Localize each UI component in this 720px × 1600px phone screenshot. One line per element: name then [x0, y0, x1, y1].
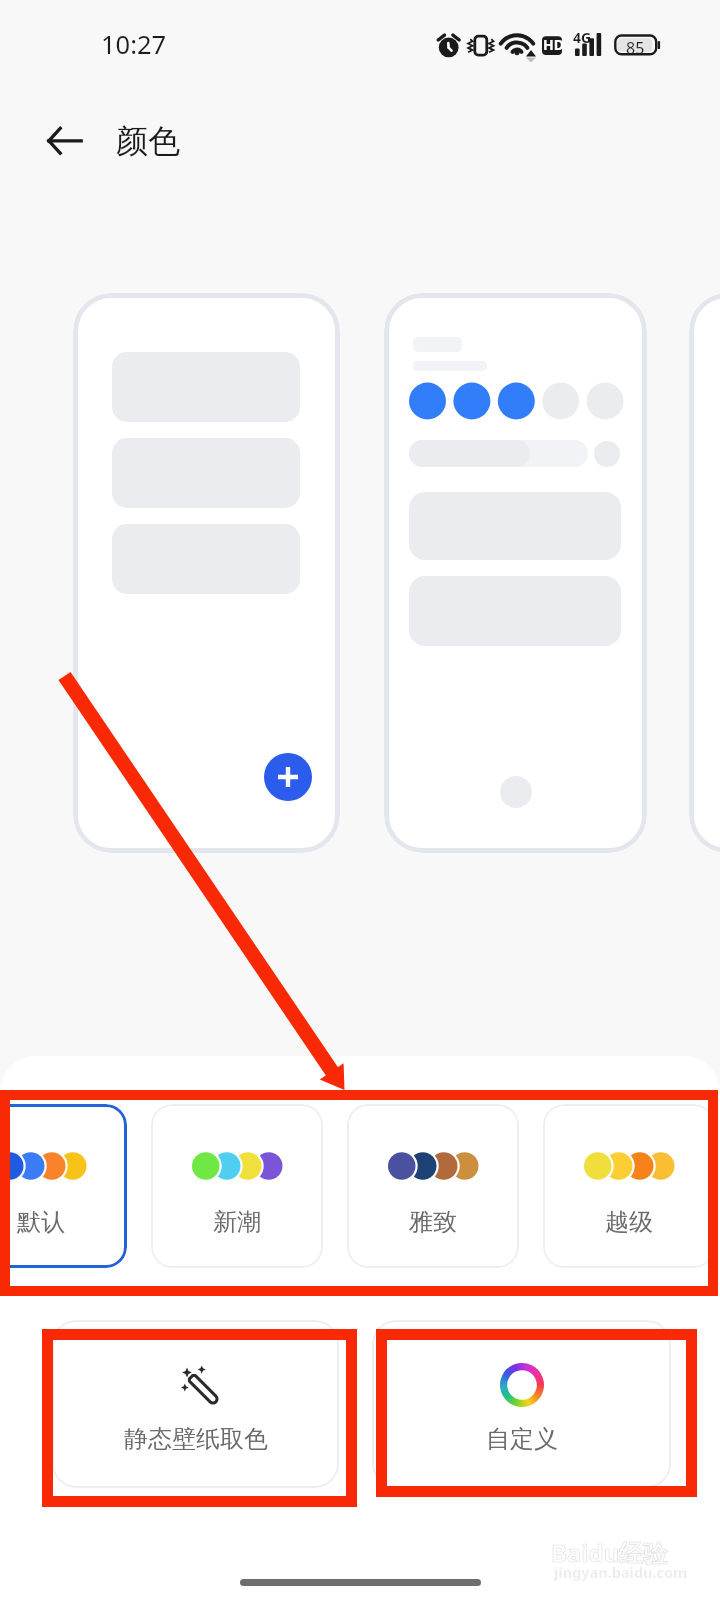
button[interactable]: 越级 [543, 1104, 715, 1268]
staticText: 10:27 [101, 27, 167, 62]
staticText: 静态壁纸取色 [124, 1424, 268, 1454]
button[interactable]: 雅致 [347, 1104, 519, 1268]
button[interactable]: Add [264, 753, 312, 801]
button[interactable]: 静态壁纸取色 [52, 1320, 339, 1488]
staticText: 默认 [17, 1207, 65, 1237]
staticText: 越级 [605, 1207, 653, 1237]
staticText: 新潮 [213, 1207, 261, 1237]
staticText: 4G [573, 28, 592, 47]
button[interactable] [689, 293, 720, 853]
staticText: 自定义 [486, 1424, 558, 1454]
staticText: HD [543, 35, 564, 54]
staticText: Baidu经验 [551, 1536, 668, 1569]
staticText: 85 [626, 37, 645, 59]
button[interactable]: Add [73, 293, 340, 853]
button[interactable] [384, 293, 647, 853]
staticText: jingyan.baidu.com [554, 1562, 688, 1582]
button[interactable]: 自定义 [372, 1320, 671, 1488]
staticText: 颜色 [116, 121, 180, 161]
button[interactable]: Back [30, 107, 102, 175]
staticText: 雅致 [409, 1207, 457, 1237]
button[interactable]: 新潮 [151, 1104, 323, 1268]
button[interactable]: 默认 [0, 1104, 127, 1268]
